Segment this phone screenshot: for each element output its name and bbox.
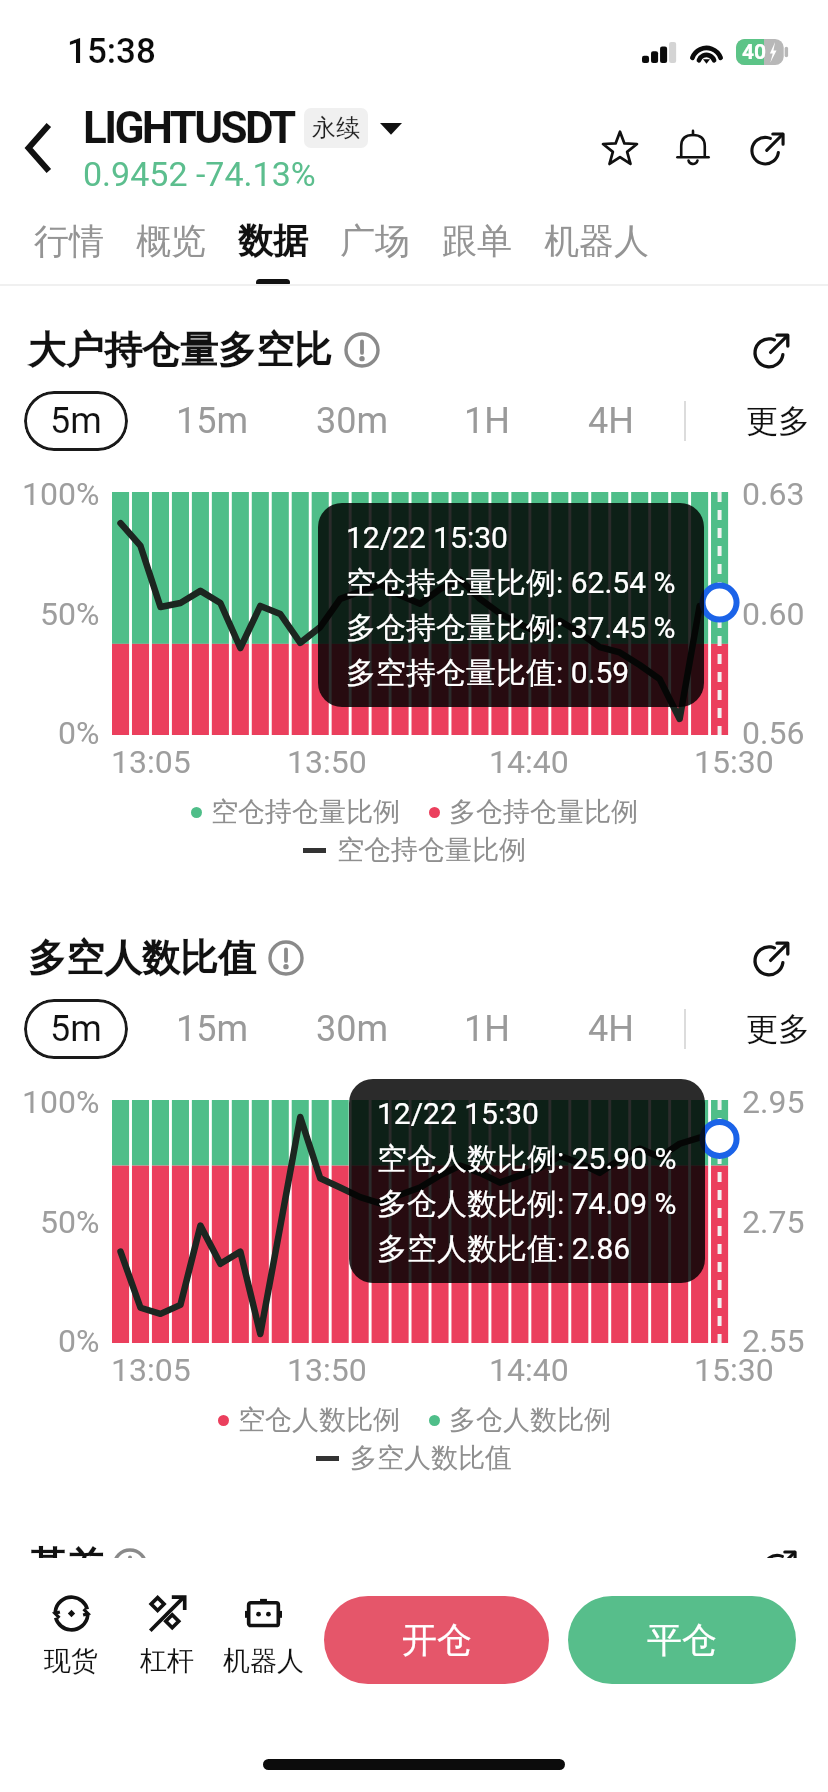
staticText: 0% <box>58 714 100 752</box>
staticText: 空仓持仓量比例 <box>337 833 526 867</box>
button[interactable]: 现货 <box>15 1592 127 1678</box>
staticText: 大户持仓量多空比 <box>28 326 332 374</box>
button[interactable]: 4H <box>588 400 634 442</box>
staticText: 2.75 <box>742 1203 805 1241</box>
staticText: 14:40 <box>489 743 569 781</box>
button[interactable]: 机器人 <box>207 1592 319 1678</box>
button[interactable]: 1H <box>464 1008 510 1050</box>
staticText: 多仓人数比例 <box>449 1403 611 1437</box>
button[interactable]: 1H <box>464 400 510 442</box>
button[interactable]: 概览 <box>120 219 222 279</box>
staticText: 更多 <box>746 1009 810 1049</box>
button[interactable]: Expand chart <box>746 323 800 377</box>
button[interactable]: 15m <box>176 400 249 442</box>
staticText: 杠杆 <box>140 1644 194 1678</box>
staticText: 2.95 <box>742 1083 805 1121</box>
staticText: 多空人数比值: 2.86 <box>377 1230 631 1268</box>
button[interactable]: 开仓 <box>324 1596 549 1684</box>
button[interactable]: Favorite <box>589 117 651 179</box>
button[interactable]: 永续 <box>304 108 368 148</box>
staticText: 0.9452 -74.13% <box>83 154 316 194</box>
staticText: 多空人数比值 <box>28 934 256 982</box>
staticText: 0.60 <box>742 595 805 633</box>
staticText: 现货 <box>44 1644 98 1678</box>
staticText: 13:05 <box>111 743 191 781</box>
staticText: 平仓 <box>647 1618 717 1662</box>
button[interactable]: Expand chart <box>746 931 800 985</box>
staticText: 开仓 <box>402 1618 472 1662</box>
staticText: 4H <box>588 1008 634 1050</box>
staticText: 多仓持仓量比例: 37.45 % <box>346 609 676 647</box>
staticText: 50% <box>40 595 100 633</box>
staticText: 15:38 <box>67 31 156 72</box>
button[interactable]: 5m <box>24 999 128 1059</box>
staticText: 4H <box>588 400 634 442</box>
button[interactable]: 广场 <box>324 219 426 279</box>
button[interactable]: Share <box>738 117 800 179</box>
button[interactable]: Back <box>0 108 80 188</box>
button[interactable]: 30m <box>316 400 389 442</box>
staticText: 5m <box>50 400 102 442</box>
staticText: 行情 <box>34 219 104 263</box>
staticText: 2.55 <box>742 1322 805 1360</box>
staticText: 0.63 <box>742 475 805 513</box>
staticText: 概览 <box>136 219 206 263</box>
button[interactable]: 数据 <box>222 219 324 286</box>
staticText: 空仓持仓量比例: 62.54 % <box>346 564 676 602</box>
staticText: 15m <box>176 400 249 442</box>
staticText: 50% <box>40 1203 100 1241</box>
staticText: 13:50 <box>287 1351 367 1389</box>
staticText: 多仓人数比例: 74.09 % <box>377 1185 677 1223</box>
staticText: 1H <box>464 1008 510 1050</box>
staticText: LIGHTUSDT <box>83 102 294 154</box>
staticText: 机器人 <box>223 1644 304 1678</box>
staticText: 多仓持仓量比例 <box>449 795 638 829</box>
button[interactable]: 平仓 <box>568 1596 796 1684</box>
button[interactable]: 4H <box>588 1008 634 1050</box>
staticText: 100% <box>22 475 100 513</box>
staticText: 空仓人数比例 <box>238 1403 400 1437</box>
button[interactable]: 5m <box>24 391 128 451</box>
button[interactable]: Contract type <box>376 113 406 143</box>
button[interactable]: Notifications <box>662 117 724 179</box>
staticText: 5m <box>50 1008 102 1050</box>
staticText: 0% <box>58 1322 100 1360</box>
staticText: 13:05 <box>111 1351 191 1389</box>
staticText: 永续 <box>312 113 360 143</box>
staticText: 更多 <box>746 401 810 441</box>
button[interactable]: 30m <box>316 1008 389 1050</box>
staticText: 12/22 15:30 <box>377 1096 539 1131</box>
staticText: 基差 <box>28 1542 104 1590</box>
staticText: 1H <box>464 400 510 442</box>
staticText: 跟单 <box>442 219 512 263</box>
staticText: 空仓持仓量比例 <box>211 795 400 829</box>
button[interactable]: 跟单 <box>426 219 528 279</box>
button[interactable]: 更多 <box>746 1009 810 1049</box>
staticText: 12/22 15:30 <box>346 520 508 555</box>
staticText: 多空人数比值 <box>350 1441 512 1475</box>
button[interactable]: 行情 <box>18 219 120 279</box>
staticText: 100% <box>22 1083 100 1121</box>
button[interactable]: 机器人 <box>528 219 665 279</box>
staticText: 空仓人数比例: 25.90 % <box>377 1140 677 1178</box>
staticText: 30m <box>316 400 389 442</box>
staticText: 多空持仓量比值: 0.59 <box>346 654 630 692</box>
staticText: 15:30 <box>694 743 774 781</box>
staticText: 14:40 <box>489 1351 569 1389</box>
button[interactable]: 15m <box>176 1008 249 1050</box>
staticText: 15:30 <box>694 1351 774 1389</box>
staticText: 0.56 <box>742 714 805 752</box>
staticText: 30m <box>316 1008 389 1050</box>
staticText: 40 <box>742 40 767 65</box>
staticText: 机器人 <box>544 219 649 263</box>
button[interactable]: 杠杆 <box>111 1592 223 1678</box>
button[interactable]: 更多 <box>746 401 810 441</box>
staticText: 15m <box>176 1008 249 1050</box>
staticText: 广场 <box>340 219 410 263</box>
staticText: 13:50 <box>287 743 367 781</box>
staticText: 数据 <box>238 219 308 263</box>
